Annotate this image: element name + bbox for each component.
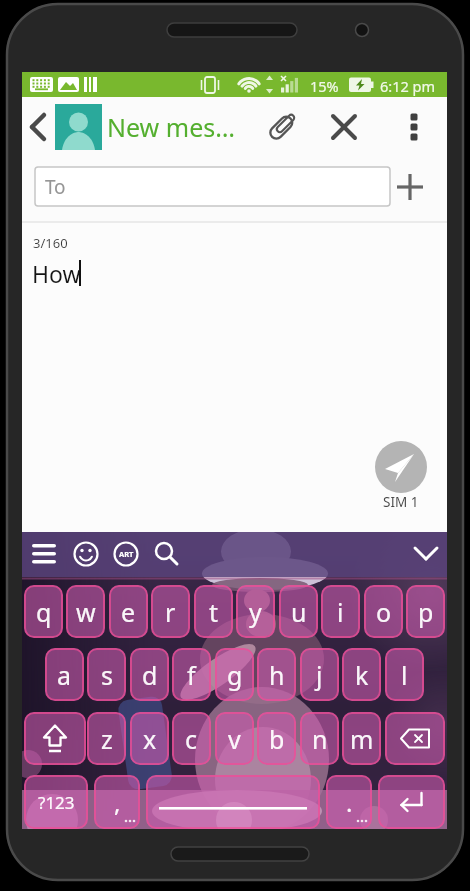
staticText: c [185,722,198,756]
staticText: z [101,722,113,756]
button[interactable] [24,712,86,765]
button[interactable] [70,538,102,570]
button[interactable] [146,775,320,829]
button[interactable]: ?123 [24,775,88,829]
button[interactable]: h [257,648,296,701]
button[interactable] [150,538,184,570]
staticText: i [337,595,344,629]
staticText: How [32,258,81,289]
staticText: 3/160 [33,234,68,252]
staticText: y [249,595,262,629]
button[interactable] [110,538,142,570]
staticText: f [187,658,196,692]
staticText: b [269,722,285,756]
button[interactable] [385,712,445,765]
staticText: ?123 [38,791,75,814]
button[interactable] [30,538,62,570]
staticText: p [418,595,434,629]
staticText: x [143,722,157,756]
button[interactable]: t [194,585,233,638]
button[interactable]: , [94,775,140,829]
button[interactable] [26,112,56,142]
button[interactable] [268,113,296,141]
button[interactable]: i [321,585,360,638]
button[interactable]: u [279,585,318,638]
button[interactable]: b [257,712,296,765]
staticText: ART [119,549,134,559]
button[interactable]: j [300,648,339,701]
button[interactable]: New mes… [107,109,257,145]
button[interactable] [375,441,427,493]
button[interactable]: x [130,712,169,765]
button[interactable]: f [172,648,211,701]
staticText: l [401,658,408,692]
button[interactable]: n [300,712,339,765]
staticText: New mes… [107,110,235,144]
staticText: g [227,658,243,692]
staticText: k [355,658,369,692]
staticText: r [165,595,176,629]
button[interactable]: s [87,648,126,701]
staticText: q [36,595,52,629]
staticText: j [316,658,323,692]
button[interactable]: m [342,712,381,765]
staticText: s [101,658,113,692]
button[interactable]: y [236,585,275,638]
staticText: , [114,786,121,819]
button[interactable] [410,538,442,570]
button[interactable]: e [109,585,148,638]
button[interactable]: a [45,648,84,701]
button[interactable]: r [151,585,190,638]
staticText: SIM 1 [383,493,419,511]
button[interactable]: d [130,648,169,701]
staticText: d [142,658,158,692]
staticText: u [291,595,307,629]
button[interactable]: p [406,585,445,638]
staticText: v [228,722,241,756]
button[interactable] [400,113,428,141]
button[interactable]: l [385,648,424,701]
button[interactable]: z [87,712,126,765]
button[interactable]: v [215,712,254,765]
button[interactable] [378,775,445,829]
staticText: w [76,595,96,629]
button[interactable]: c [172,712,211,765]
button[interactable]: o [364,585,403,638]
staticText: t [209,595,219,629]
button[interactable]: w [66,585,105,638]
staticText: 15% [310,76,339,96]
staticText: To [35,174,66,200]
staticText: . [346,786,353,819]
staticText: n [312,722,328,756]
staticText: o [376,595,392,629]
staticText: a [57,658,72,692]
button[interactable]: k [342,648,381,701]
button[interactable]: . [326,775,372,829]
button[interactable] [330,113,358,141]
staticText: h [269,658,285,692]
staticText: m [350,722,374,756]
staticText: e [121,595,136,629]
button[interactable]: q [24,585,63,638]
button[interactable]: To [35,167,390,206]
staticText: 6:12 pm [380,76,436,96]
button[interactable] [394,171,426,203]
button[interactable]: g [215,648,254,701]
